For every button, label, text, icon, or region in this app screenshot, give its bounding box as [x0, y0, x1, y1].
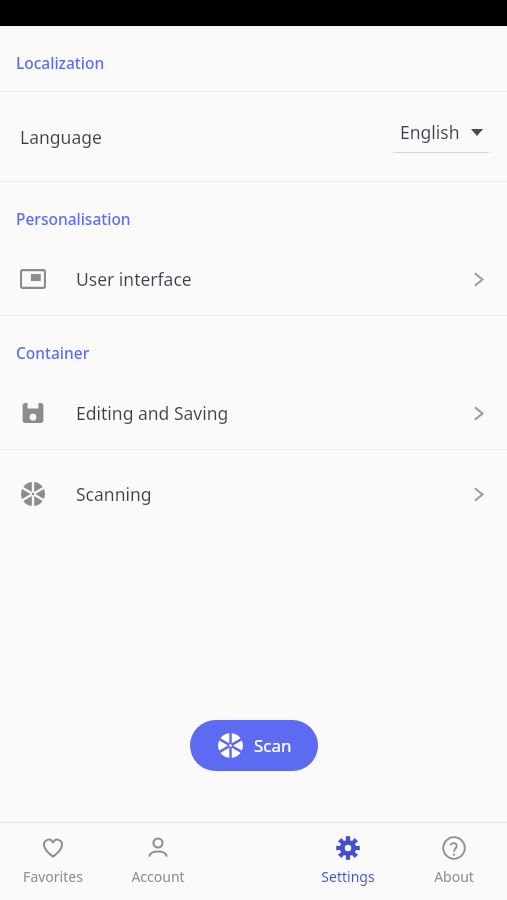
staticText: Container — [16, 342, 90, 363]
button[interactable]: Favorites — [0, 822, 105, 900]
staticText: Scanning — [76, 482, 152, 506]
button[interactable]: Scan — [190, 720, 318, 771]
button[interactable]: Account — [105, 822, 211, 900]
button[interactable]: Language — [0, 92, 507, 181]
staticText: Account — [131, 867, 185, 886]
staticText: Favorites — [23, 867, 83, 886]
staticText: Settings — [321, 867, 375, 886]
button[interactable]: About — [401, 822, 507, 900]
button[interactable]: Settings — [295, 822, 401, 900]
button[interactable]: Scanning — [0, 450, 507, 538]
button[interactable]: Editing and Saving — [0, 377, 507, 449]
staticText: About — [434, 867, 474, 886]
staticText: Scan — [254, 734, 292, 757]
staticText: Personalisation — [16, 208, 131, 229]
staticText: Language — [20, 125, 102, 149]
button[interactable]: User interface — [0, 243, 507, 315]
staticText: Localization — [16, 52, 105, 73]
staticText: User interface — [76, 267, 192, 291]
staticText: Editing and Saving — [76, 401, 229, 425]
staticText: English — [400, 120, 460, 144]
